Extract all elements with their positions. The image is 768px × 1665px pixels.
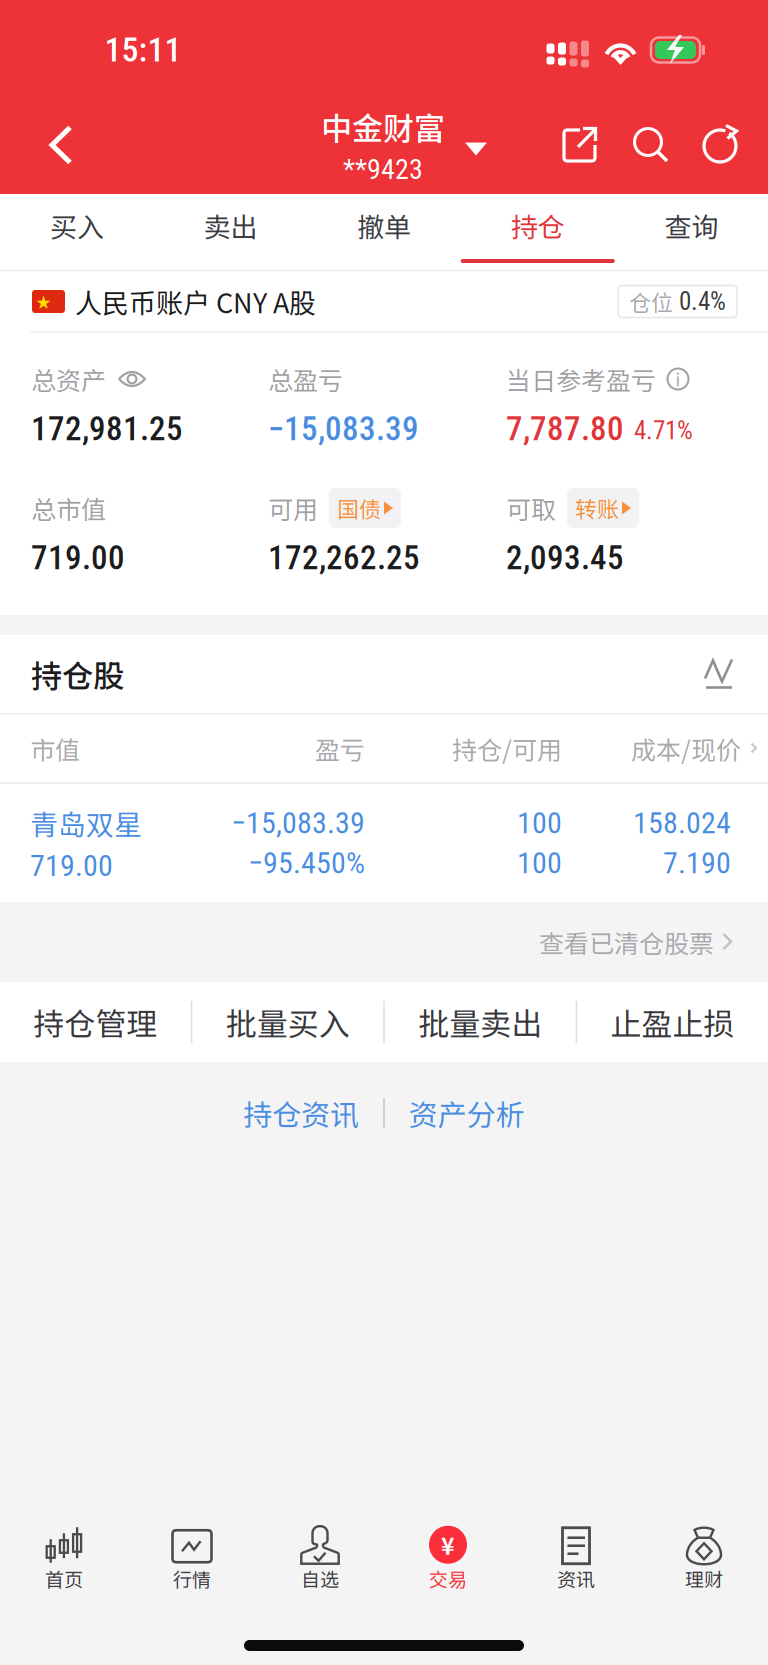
- staticText: 7,787.80: [506, 410, 624, 448]
- button[interactable]: Search: [632, 126, 670, 164]
- staticText: 行情: [173, 1565, 211, 1592]
- staticText: 持仓: [511, 206, 565, 245]
- staticText: 首页: [45, 1565, 83, 1592]
- button[interactable]: 资讯: [512, 1510, 640, 1608]
- staticText: −15,083.39: [268, 410, 419, 448]
- staticText: 总盈亏: [268, 361, 343, 397]
- button[interactable]: 查询: [614, 194, 768, 270]
- staticText: 持仓股: [31, 652, 124, 696]
- button[interactable]: 中金财富: [281, 104, 487, 186]
- staticText: 总市值: [31, 490, 106, 526]
- staticText: 批量卖出: [418, 1000, 542, 1044]
- staticText: 批量买入: [226, 1000, 350, 1044]
- staticText: 国债: [337, 492, 381, 524]
- button[interactable]: 批量卖出: [385, 982, 576, 1062]
- staticText: 资讯: [557, 1565, 595, 1592]
- staticText: 719.00: [30, 848, 113, 883]
- staticText: 人民币账户 CNY A股: [75, 282, 316, 321]
- staticText: 0.4%: [679, 287, 726, 316]
- staticText: ★: [36, 291, 51, 312]
- button[interactable]: 资产分析: [409, 1092, 525, 1134]
- staticText: 仓位: [629, 286, 673, 317]
- button[interactable]: 批量买入: [192, 982, 383, 1062]
- staticText: 可取: [506, 490, 556, 526]
- staticText: 交易: [429, 1565, 467, 1592]
- staticText: 总资产: [31, 361, 106, 397]
- button[interactable]: 卖出: [154, 194, 307, 270]
- staticText: 4.71%: [634, 416, 693, 445]
- staticText: −15,083.39: [231, 805, 365, 840]
- button[interactable]: 买入: [0, 194, 154, 270]
- staticText: 自选: [301, 1565, 339, 1592]
- staticText: 持仓资讯: [243, 1092, 359, 1134]
- staticText: 转账: [575, 492, 619, 524]
- button[interactable]: Share: [562, 126, 598, 164]
- staticText: 100: [517, 805, 562, 840]
- button[interactable]: Refresh: [701, 125, 740, 165]
- staticText: 中金财富: [321, 104, 445, 149]
- button[interactable]: 青岛双星: [0, 784, 768, 902]
- staticText: 当日参考盈亏: [506, 361, 656, 397]
- button[interactable]: 仓位: [618, 285, 737, 317]
- staticText: 资产分析: [409, 1092, 525, 1134]
- staticText: 青岛双星: [30, 803, 142, 843]
- button[interactable]: 查看已清仓股票: [0, 902, 768, 982]
- staticText: 172,981.25: [31, 410, 183, 448]
- staticText: 理财: [685, 1565, 723, 1592]
- staticText: 15:11: [104, 30, 181, 70]
- button[interactable]: 理财: [640, 1510, 768, 1608]
- button[interactable]: 行情: [128, 1510, 256, 1608]
- staticText: 7.190: [663, 845, 731, 881]
- staticText: i: [675, 367, 680, 391]
- staticText: 撤单: [357, 206, 411, 245]
- button[interactable]: 持仓管理: [0, 982, 191, 1062]
- staticText: 盈亏: [315, 730, 365, 767]
- button[interactable]: ¥: [384, 1510, 512, 1608]
- staticText: 卖出: [204, 206, 258, 245]
- staticText: ¥: [441, 1528, 455, 1561]
- staticText: **9423: [343, 153, 423, 186]
- staticText: 买入: [50, 206, 104, 245]
- staticText: 市值: [30, 730, 80, 767]
- staticText: 查询: [664, 206, 718, 245]
- staticText: 158.024: [633, 805, 731, 840]
- button[interactable]: 撤单: [307, 194, 461, 270]
- staticText: 持仓/可用: [452, 730, 562, 767]
- staticText: −95.450%: [248, 845, 365, 881]
- staticText: 成本/现价: [631, 730, 741, 767]
- staticText: 可用: [268, 490, 318, 526]
- button[interactable]: Back: [13, 98, 109, 192]
- staticText: 719.00: [31, 539, 125, 577]
- staticText: 2,093.45: [506, 539, 624, 577]
- button[interactable]: 持仓资讯: [243, 1092, 359, 1134]
- staticText: 止盈止损: [611, 1000, 735, 1044]
- button[interactable]: Trend chart: [704, 658, 734, 689]
- staticText: 172,262.25: [268, 539, 420, 577]
- staticText: 查看已清仓股票: [539, 924, 714, 960]
- staticText: 100: [517, 845, 562, 881]
- button[interactable]: 持仓: [461, 194, 614, 270]
- button[interactable]: 首页: [0, 1510, 128, 1608]
- button[interactable]: 自选: [256, 1510, 384, 1608]
- staticText: 持仓管理: [33, 1000, 157, 1044]
- button[interactable]: 止盈止损: [577, 982, 768, 1062]
